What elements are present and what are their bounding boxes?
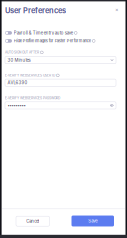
staticText: E-VERIFY WEBSERVICES PASSWORD bbox=[5, 96, 60, 100]
staticText: AVL6390 bbox=[7, 80, 27, 85]
button[interactable]: Payroll & Time entry auto save bbox=[5, 30, 116, 36]
staticText: AUTO SIGN OUT AFTER bbox=[5, 50, 39, 54]
button[interactable]: 30 Minutes bbox=[5, 56, 116, 64]
staticText: E-VERIFY WEBSERVICES USER ID bbox=[5, 73, 55, 77]
button[interactable]: Cancel bbox=[16, 216, 49, 226]
staticText: Save bbox=[88, 218, 97, 224]
staticText: 30 Minutes bbox=[7, 57, 30, 63]
button[interactable]: Show password bbox=[110, 104, 114, 107]
staticText: User Preferences bbox=[5, 6, 66, 15]
staticText: ••••••••• bbox=[7, 103, 25, 108]
button[interactable]: Save bbox=[71, 216, 114, 226]
staticText: Hide Profile Images for Faster Performan… bbox=[14, 38, 91, 43]
staticText: Payroll & Time entry auto save bbox=[14, 30, 73, 35]
staticText: Cancel bbox=[26, 219, 39, 224]
button[interactable]: Close bbox=[113, 6, 121, 14]
button[interactable]: Hide Profile Images for Faster Performan… bbox=[5, 38, 116, 44]
staticText: ✕ bbox=[115, 7, 119, 12]
